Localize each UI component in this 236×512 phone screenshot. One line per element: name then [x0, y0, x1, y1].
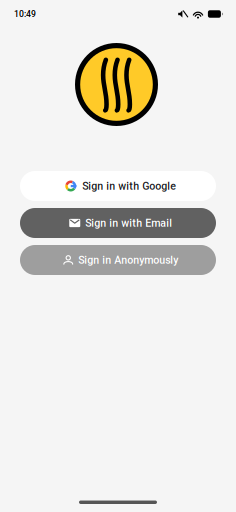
button[interactable]: Sign in with Email: [20, 208, 216, 238]
staticText: Sign in with Google: [82, 180, 176, 192]
button[interactable]: Sign in Anonymously: [20, 245, 216, 275]
staticText: Sign in Anonymously: [78, 254, 178, 266]
staticText: 10:49: [14, 9, 36, 19]
staticText: Sign in with Email: [85, 217, 172, 229]
button[interactable]: Sign in with Google: [20, 171, 216, 201]
